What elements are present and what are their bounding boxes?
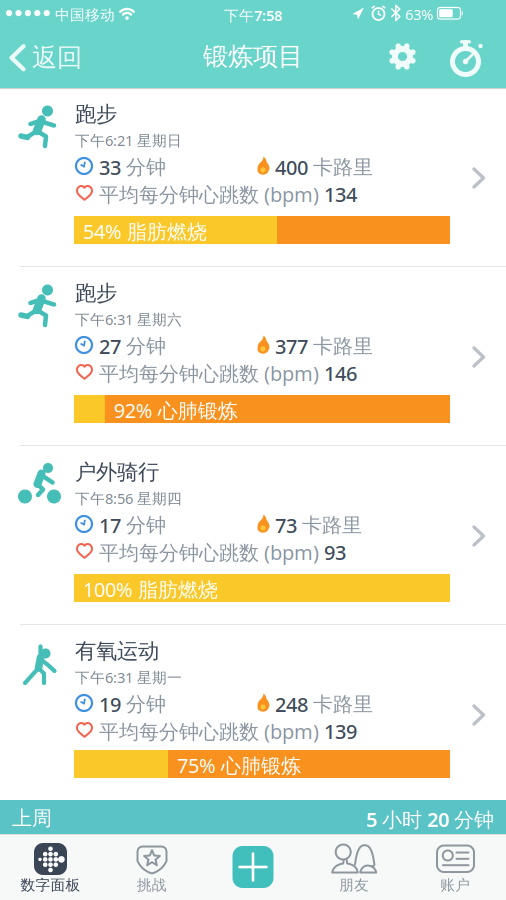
button[interactable] — [0, 834, 41, 876]
button[interactable]: 朋友 — [0, 834, 101, 900]
staticText: 跑步 — [75, 280, 117, 306]
staticText: 平均每分钟心跳数 (bpm) — [99, 360, 319, 387]
staticText: 户外骑行 — [75, 459, 159, 485]
staticText: 5 小时 20 分钟 — [366, 806, 494, 833]
button[interactable]: 账户 — [0, 834, 101, 900]
staticText: 朋友 — [339, 876, 369, 894]
button[interactable] — [0, 27, 35, 65]
staticText: 下午6:31 星期六 — [75, 309, 182, 329]
staticText: 上周 — [12, 806, 52, 831]
button[interactable]: 户外骑行 — [0, 446, 506, 625]
staticText: 17 — [99, 512, 121, 539]
staticText: 卡路里 — [313, 155, 373, 180]
staticText: 54% 脂肪燃烧 — [83, 218, 207, 245]
staticText: 下午8:56 星期四 — [75, 488, 182, 508]
staticText: 248 — [275, 691, 308, 718]
staticText: 分钟 — [126, 692, 166, 717]
staticText: 63% — [405, 4, 433, 24]
staticText: 挑战 — [137, 876, 167, 894]
staticText: 下午7:58 — [224, 5, 282, 25]
staticText: 27 — [99, 333, 121, 360]
staticText: 有氧运动 — [75, 638, 159, 664]
button[interactable]: 数字面板 — [0, 834, 101, 900]
button[interactable] — [0, 27, 27, 54]
staticText: 139 — [324, 718, 357, 745]
staticText: 100% 脂肪燃烧 — [83, 576, 218, 603]
staticText: 跑步 — [75, 101, 117, 127]
staticText: 377 — [275, 333, 308, 360]
button[interactable]: 返回 — [0, 27, 73, 58]
staticText: 返回 — [32, 42, 82, 73]
staticText: 146 — [324, 360, 357, 387]
staticText: 分钟 — [126, 334, 166, 359]
staticText: 400 — [275, 154, 308, 181]
staticText: 73 — [275, 512, 297, 539]
staticText: 卡路里 — [302, 513, 362, 538]
staticText: 卡路里 — [313, 334, 373, 359]
staticText: 下午6:21 星期日 — [75, 130, 182, 150]
button[interactable]: 有氧运动 — [0, 625, 506, 800]
staticText: 中国移动 — [55, 6, 115, 24]
button[interactable]: 跑步 — [0, 267, 506, 446]
staticText: 92% 心肺锻炼 — [114, 397, 238, 424]
button[interactable]: 跑步 — [0, 88, 506, 267]
staticText: 数字面板 — [20, 876, 80, 894]
staticText: 卡路里 — [313, 692, 373, 717]
staticText: 平均每分钟心跳数 (bpm) — [99, 718, 319, 745]
staticText: 93 — [324, 539, 346, 566]
staticText: 账户 — [440, 876, 470, 894]
staticText: 134 — [324, 181, 357, 208]
staticText: 平均每分钟心跳数 (bpm) — [99, 181, 319, 208]
button[interactable]: 挑战 — [0, 834, 101, 900]
staticText: 平均每分钟心跳数 (bpm) — [99, 539, 319, 566]
staticText: 分钟 — [126, 513, 166, 538]
staticText: 33 — [99, 154, 121, 181]
staticText: 锻炼项目 — [203, 41, 303, 72]
staticText: 分钟 — [126, 155, 166, 180]
staticText: 75% 心肺锻炼 — [177, 752, 301, 779]
staticText: 19 — [99, 691, 121, 718]
staticText: 下午6:31 星期一 — [75, 667, 182, 687]
